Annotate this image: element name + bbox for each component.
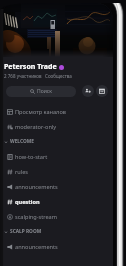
button[interactable]: Просмотр каналов — [3, 104, 113, 119]
staticText: Peterson Trade — [4, 62, 57, 72]
staticText: WELCOME — [10, 138, 34, 145]
staticText: announcements — [15, 243, 58, 251]
button[interactable]: Invite people — [82, 85, 94, 97]
button[interactable]: Поиск — [6, 86, 76, 97]
button[interactable]: SCALP ROOM — [3, 224, 113, 239]
button[interactable]: announcements — [3, 239, 113, 254]
staticText: Просмотр каналов — [15, 108, 66, 116]
staticText: announcements — [15, 183, 58, 191]
staticText: Поиск — [37, 88, 52, 95]
button[interactable]: announcements — [3, 179, 113, 194]
button[interactable]: rules — [3, 164, 113, 179]
button[interactable]: WELCOME — [3, 134, 113, 149]
staticText: question — [15, 198, 40, 206]
button[interactable]: how-to-start — [3, 149, 113, 164]
staticText: scalping-stream — [15, 213, 57, 221]
staticText: how-to-start — [15, 153, 48, 161]
staticText: moderator-only — [15, 123, 57, 131]
staticText: rules — [15, 168, 29, 176]
button[interactable]: scalping-stream — [3, 209, 113, 224]
button[interactable]: moderator-only — [3, 119, 113, 134]
staticText: SCALP ROOM — [10, 228, 42, 235]
staticText: 2 768 участников — [4, 73, 42, 79]
staticText: Сообщества — [45, 73, 72, 79]
button[interactable]: Events — [96, 85, 108, 97]
button[interactable]: question — [3, 194, 113, 209]
